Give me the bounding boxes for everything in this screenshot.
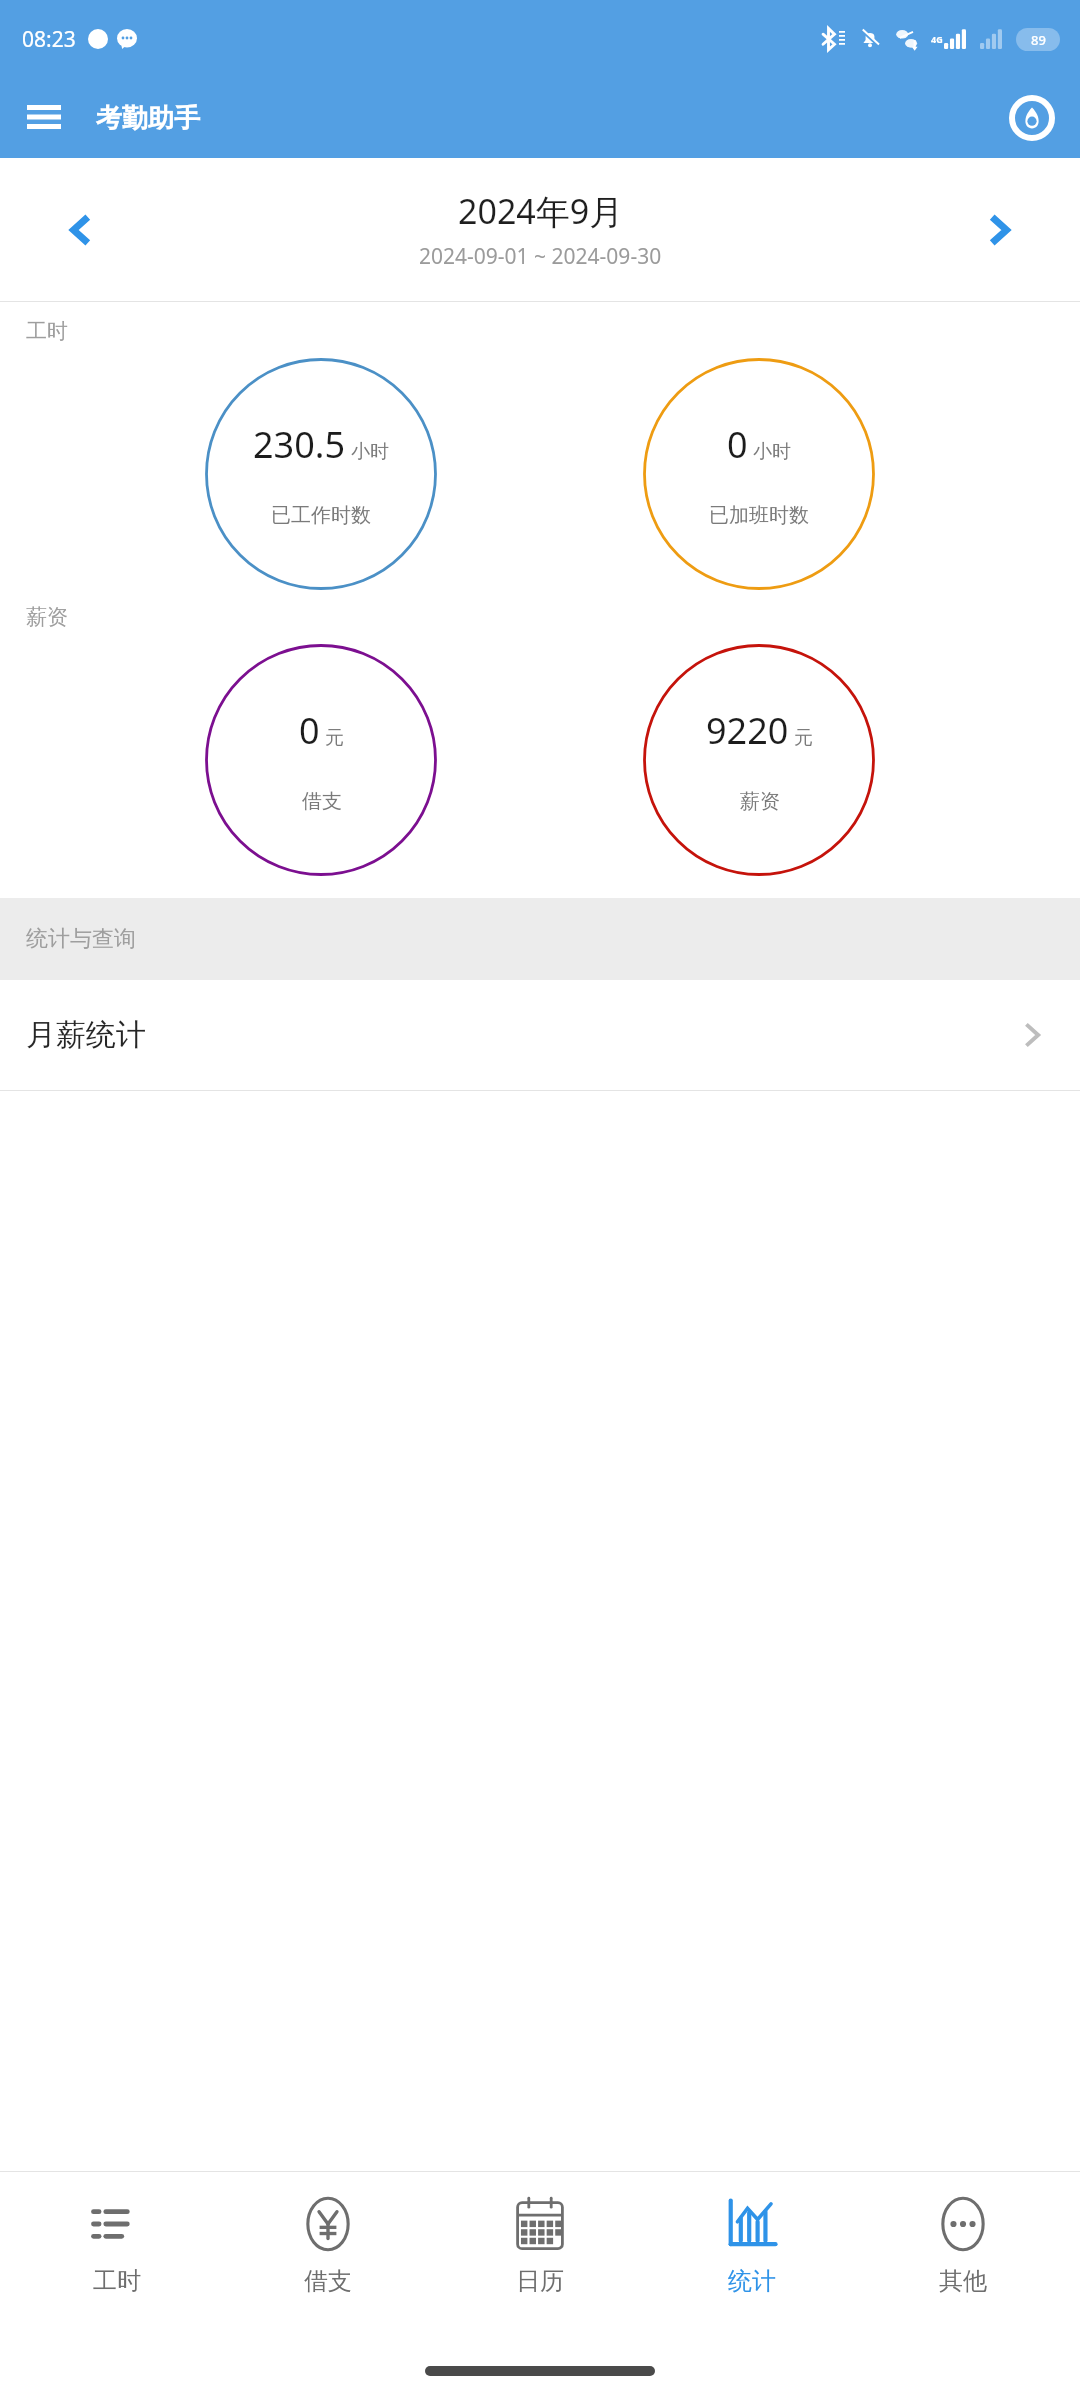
staticText: 薪资 [26,604,68,630]
button[interactable]: 日历 [445,2172,635,2342]
staticText: 统计与查询 [26,925,136,953]
staticText: 已工作时数 [271,503,371,528]
button[interactable]: Sync [1002,88,1062,148]
staticText: 借支 [302,789,342,814]
button[interactable]: 0 [643,358,875,590]
staticText: 月薪统计 [26,1016,146,1054]
staticText: 2024-09-01 ~ 2024-09-30 [419,242,662,271]
staticText: 工时 [26,318,68,344]
staticText: 4G [931,33,943,45]
staticText: 元 [794,726,813,750]
staticText: 9220 [706,706,789,755]
staticText: 薪资 [740,789,780,814]
button[interactable]: 9220 [643,644,875,876]
staticText: 小时 [351,440,389,464]
staticText: 统计 [728,2266,776,2296]
button[interactable]: Next month [966,197,1032,263]
button[interactable]: 0 [205,644,437,876]
button[interactable]: 月薪统计 [0,980,1080,1090]
button[interactable]: Previous month [48,197,114,263]
staticText: 工时 [93,2266,141,2296]
staticText: 0 [299,706,320,755]
staticText: 考勤助手 [96,102,200,135]
staticText: 230.5 [253,420,346,469]
staticText: 2024年9月 [458,188,624,234]
staticText: 已加班时数 [709,503,809,528]
button[interactable]: 统计 [657,2172,847,2342]
button[interactable]: 230.5 [205,358,437,590]
staticText: 日历 [516,2266,564,2296]
staticText: 元 [325,726,344,750]
staticText: 89 [1031,31,1046,49]
button[interactable]: 其他 [868,2172,1058,2342]
staticText: 小时 [753,440,791,464]
button[interactable]: 工时 [22,2172,212,2342]
button[interactable]: 借支 [233,2172,423,2342]
staticText: 借支 [304,2266,352,2296]
staticText: 其他 [939,2266,987,2296]
staticText: 0 [727,420,748,469]
staticText: 08:23 [22,25,76,54]
button[interactable]: Menu [14,88,74,148]
